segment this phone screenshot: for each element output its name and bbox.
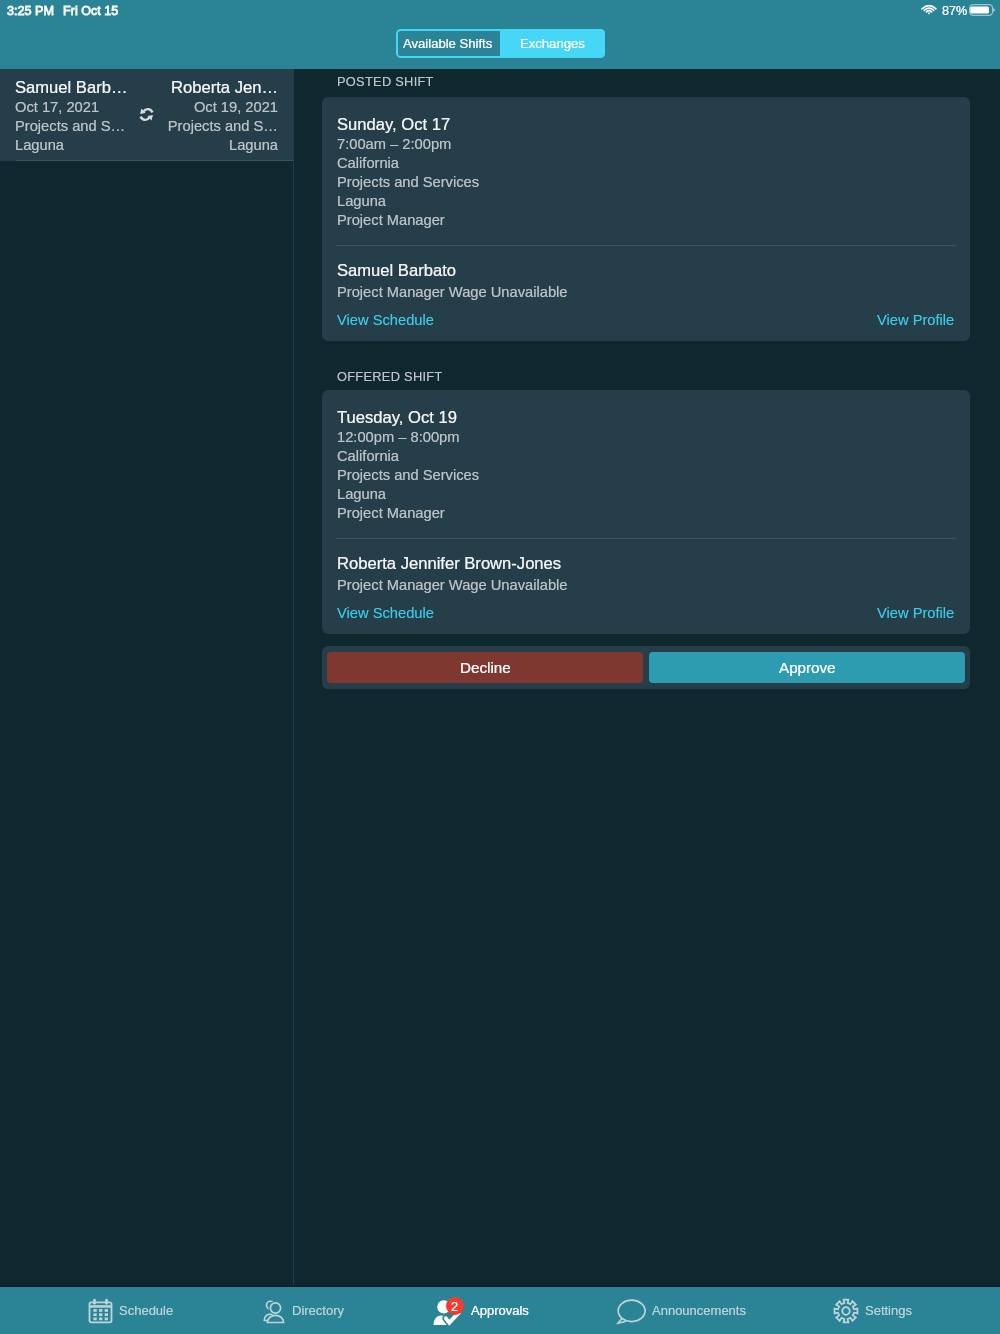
staticText: Laguna — [337, 190, 387, 209]
button[interactable]: Settings — [833, 1287, 912, 1334]
staticText: View Profile — [877, 309, 955, 328]
staticText: View Schedule — [337, 309, 434, 328]
staticText: OFFERED SHIFT — [337, 369, 443, 383]
button[interactable]: View Schedule — [337, 602, 434, 621]
staticText: Directory — [292, 1303, 345, 1318]
staticText: Settings — [865, 1303, 912, 1318]
staticText: 2 — [451, 1299, 459, 1313]
staticText: Approvals — [471, 1303, 529, 1318]
staticText: 7:00am – 2:00pm — [337, 133, 452, 152]
staticText: 3:25 PM — [7, 4, 54, 18]
button[interactable]: Samuel Barb… — [0, 69, 293, 161]
other: Swap shifts — [139, 106, 154, 123]
staticText: Project Manager Wage Unavailable — [337, 574, 568, 593]
staticText: View Schedule — [337, 602, 434, 621]
staticText: View Profile — [877, 602, 955, 621]
button[interactable]: View Schedule — [337, 309, 434, 328]
staticText: Project Manager — [337, 209, 445, 228]
staticText: Oct 17, 2021 — [15, 96, 100, 115]
button[interactable]: Available Shifts — [396, 29, 500, 58]
staticText: Schedule — [119, 1303, 174, 1318]
staticText: Projects and Services — [337, 171, 480, 190]
staticText: Tuesday, Oct 19 — [337, 407, 457, 426]
staticText: Oct 19, 2021 — [193, 96, 278, 115]
staticText: Samuel Barb… — [15, 77, 128, 96]
staticText: Decline — [460, 659, 511, 676]
staticText: Fri Oct 15 — [63, 4, 119, 18]
staticText: 12:00pm – 8:00pm — [337, 426, 460, 445]
staticText: Announcements — [652, 1303, 746, 1318]
button[interactable]: Directory — [261, 1287, 345, 1334]
button[interactable]: View Profile — [877, 602, 955, 621]
staticText: Exchanges — [520, 36, 585, 51]
staticText: Laguna — [228, 134, 278, 153]
staticText: California — [337, 445, 400, 464]
button[interactable]: Announcements — [617, 1287, 746, 1334]
staticText: Projects and Services — [337, 464, 480, 483]
staticText: Available Shifts — [403, 36, 493, 51]
staticText: Roberta Jennifer Brown-Jones — [337, 553, 562, 572]
staticText: Project Manager — [337, 502, 445, 521]
staticText: POSTED SHIFT — [337, 74, 434, 88]
staticText: Samuel Barbato — [337, 260, 456, 279]
button[interactable]: Decline — [327, 652, 643, 683]
staticText: Projects and S… — [167, 115, 278, 134]
staticText: Sunday, Oct 17 — [337, 114, 451, 133]
staticText: Approve — [779, 659, 836, 676]
staticText: Roberta Jen… — [171, 77, 278, 96]
button[interactable]: View Profile — [877, 309, 955, 328]
button[interactable]: Approvals, 2 pending — [433, 1287, 529, 1334]
button[interactable]: Exchanges — [500, 29, 605, 58]
staticText: California — [337, 152, 400, 171]
button[interactable]: Schedule — [88, 1287, 174, 1334]
other: Approvals, 2 pending — [433, 1297, 465, 1324]
staticText: Project Manager Wage Unavailable — [337, 281, 568, 300]
staticText: 87% — [942, 4, 968, 18]
staticText: Laguna — [15, 134, 65, 153]
staticText: Laguna — [337, 483, 387, 502]
staticText: Projects and S… — [15, 115, 126, 134]
button[interactable]: Approve — [649, 652, 965, 683]
